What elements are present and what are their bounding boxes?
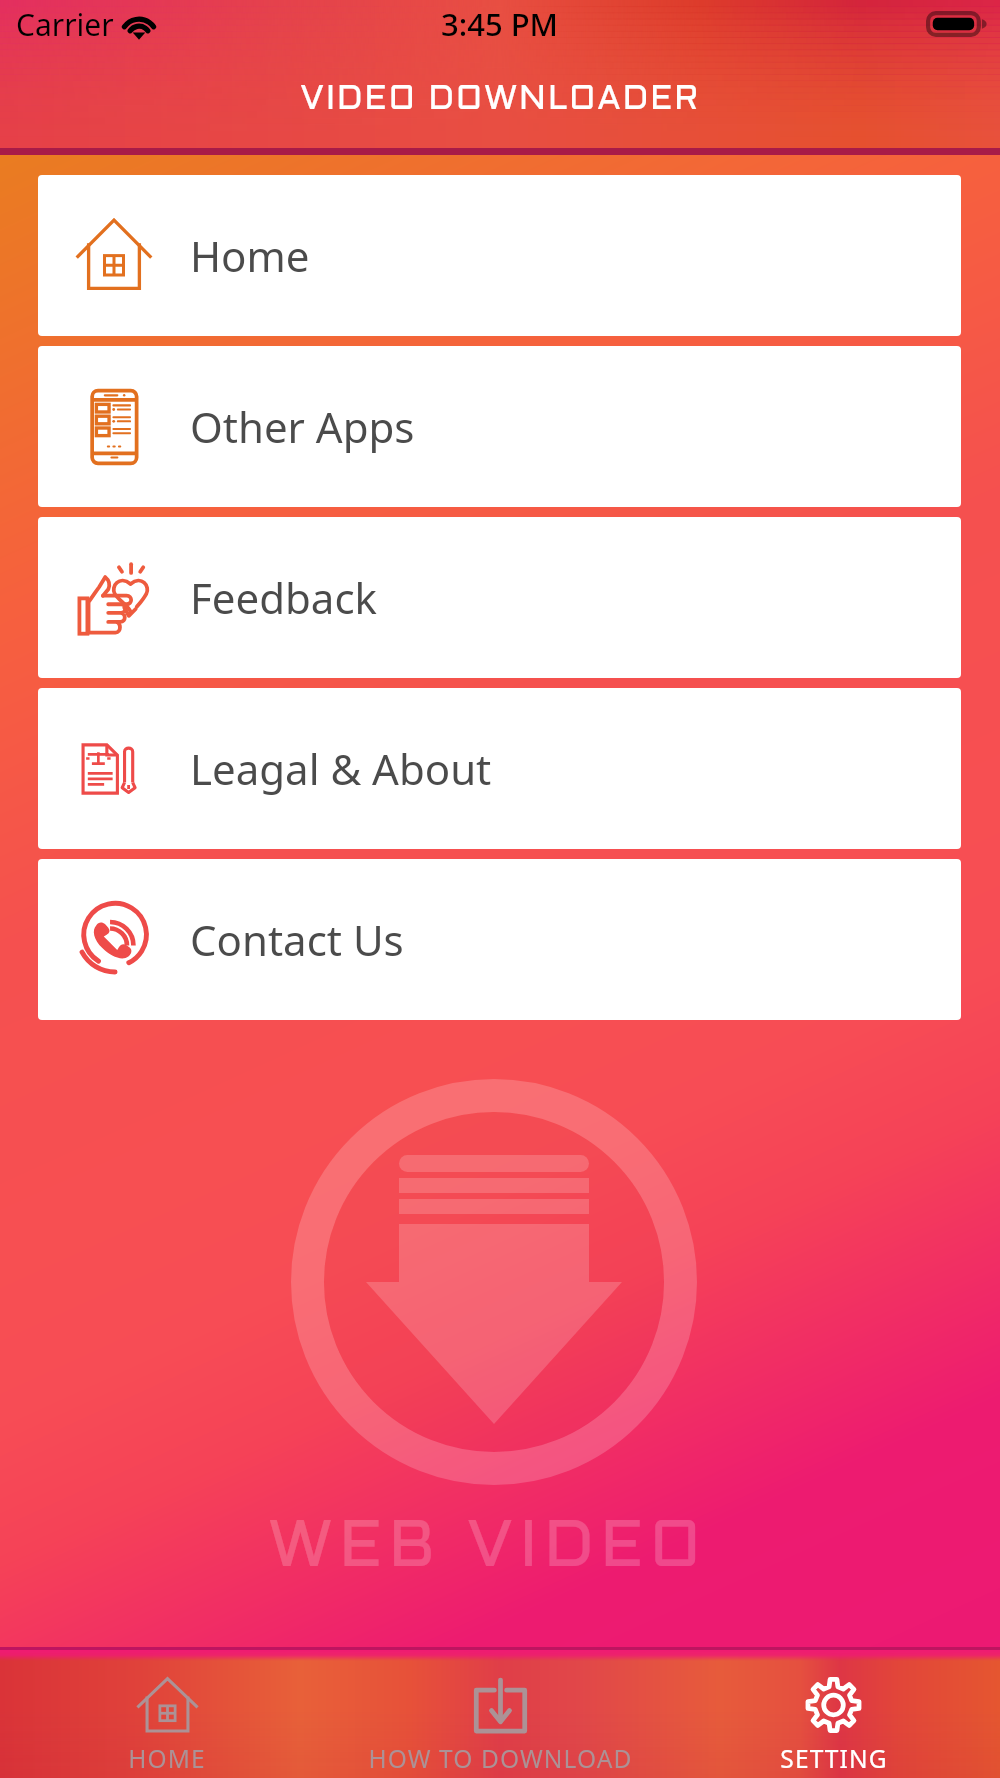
staticText: Carrier <box>16 4 114 45</box>
staticText: Other Apps <box>190 398 415 455</box>
button[interactable]: Other Apps <box>38 346 961 507</box>
staticText: Leagal & About <box>190 740 492 797</box>
button[interactable]: Contact Us <box>38 859 961 1020</box>
staticText: HOME <box>128 1742 206 1775</box>
button[interactable]: HOW TO DOWNLOAD <box>334 1650 667 1778</box>
button[interactable]: Leagal & About <box>38 688 961 849</box>
staticText: SETTING <box>780 1742 888 1775</box>
staticText: 3:45 PM <box>441 3 559 45</box>
staticText: Contact Us <box>190 911 404 968</box>
staticText: VIDEO DOWNLOADER <box>300 85 701 117</box>
button[interactable]: SETTING <box>667 1650 1000 1778</box>
staticText: WEB VIDEO <box>268 1518 708 1579</box>
button[interactable]: Home <box>38 175 961 336</box>
staticText: Home <box>190 227 310 284</box>
button[interactable]: HOME <box>0 1650 334 1778</box>
staticText: HOW TO DOWNLOAD <box>368 1742 633 1775</box>
staticText: Feedback <box>190 569 377 626</box>
button[interactable]: Feedback <box>38 517 961 678</box>
